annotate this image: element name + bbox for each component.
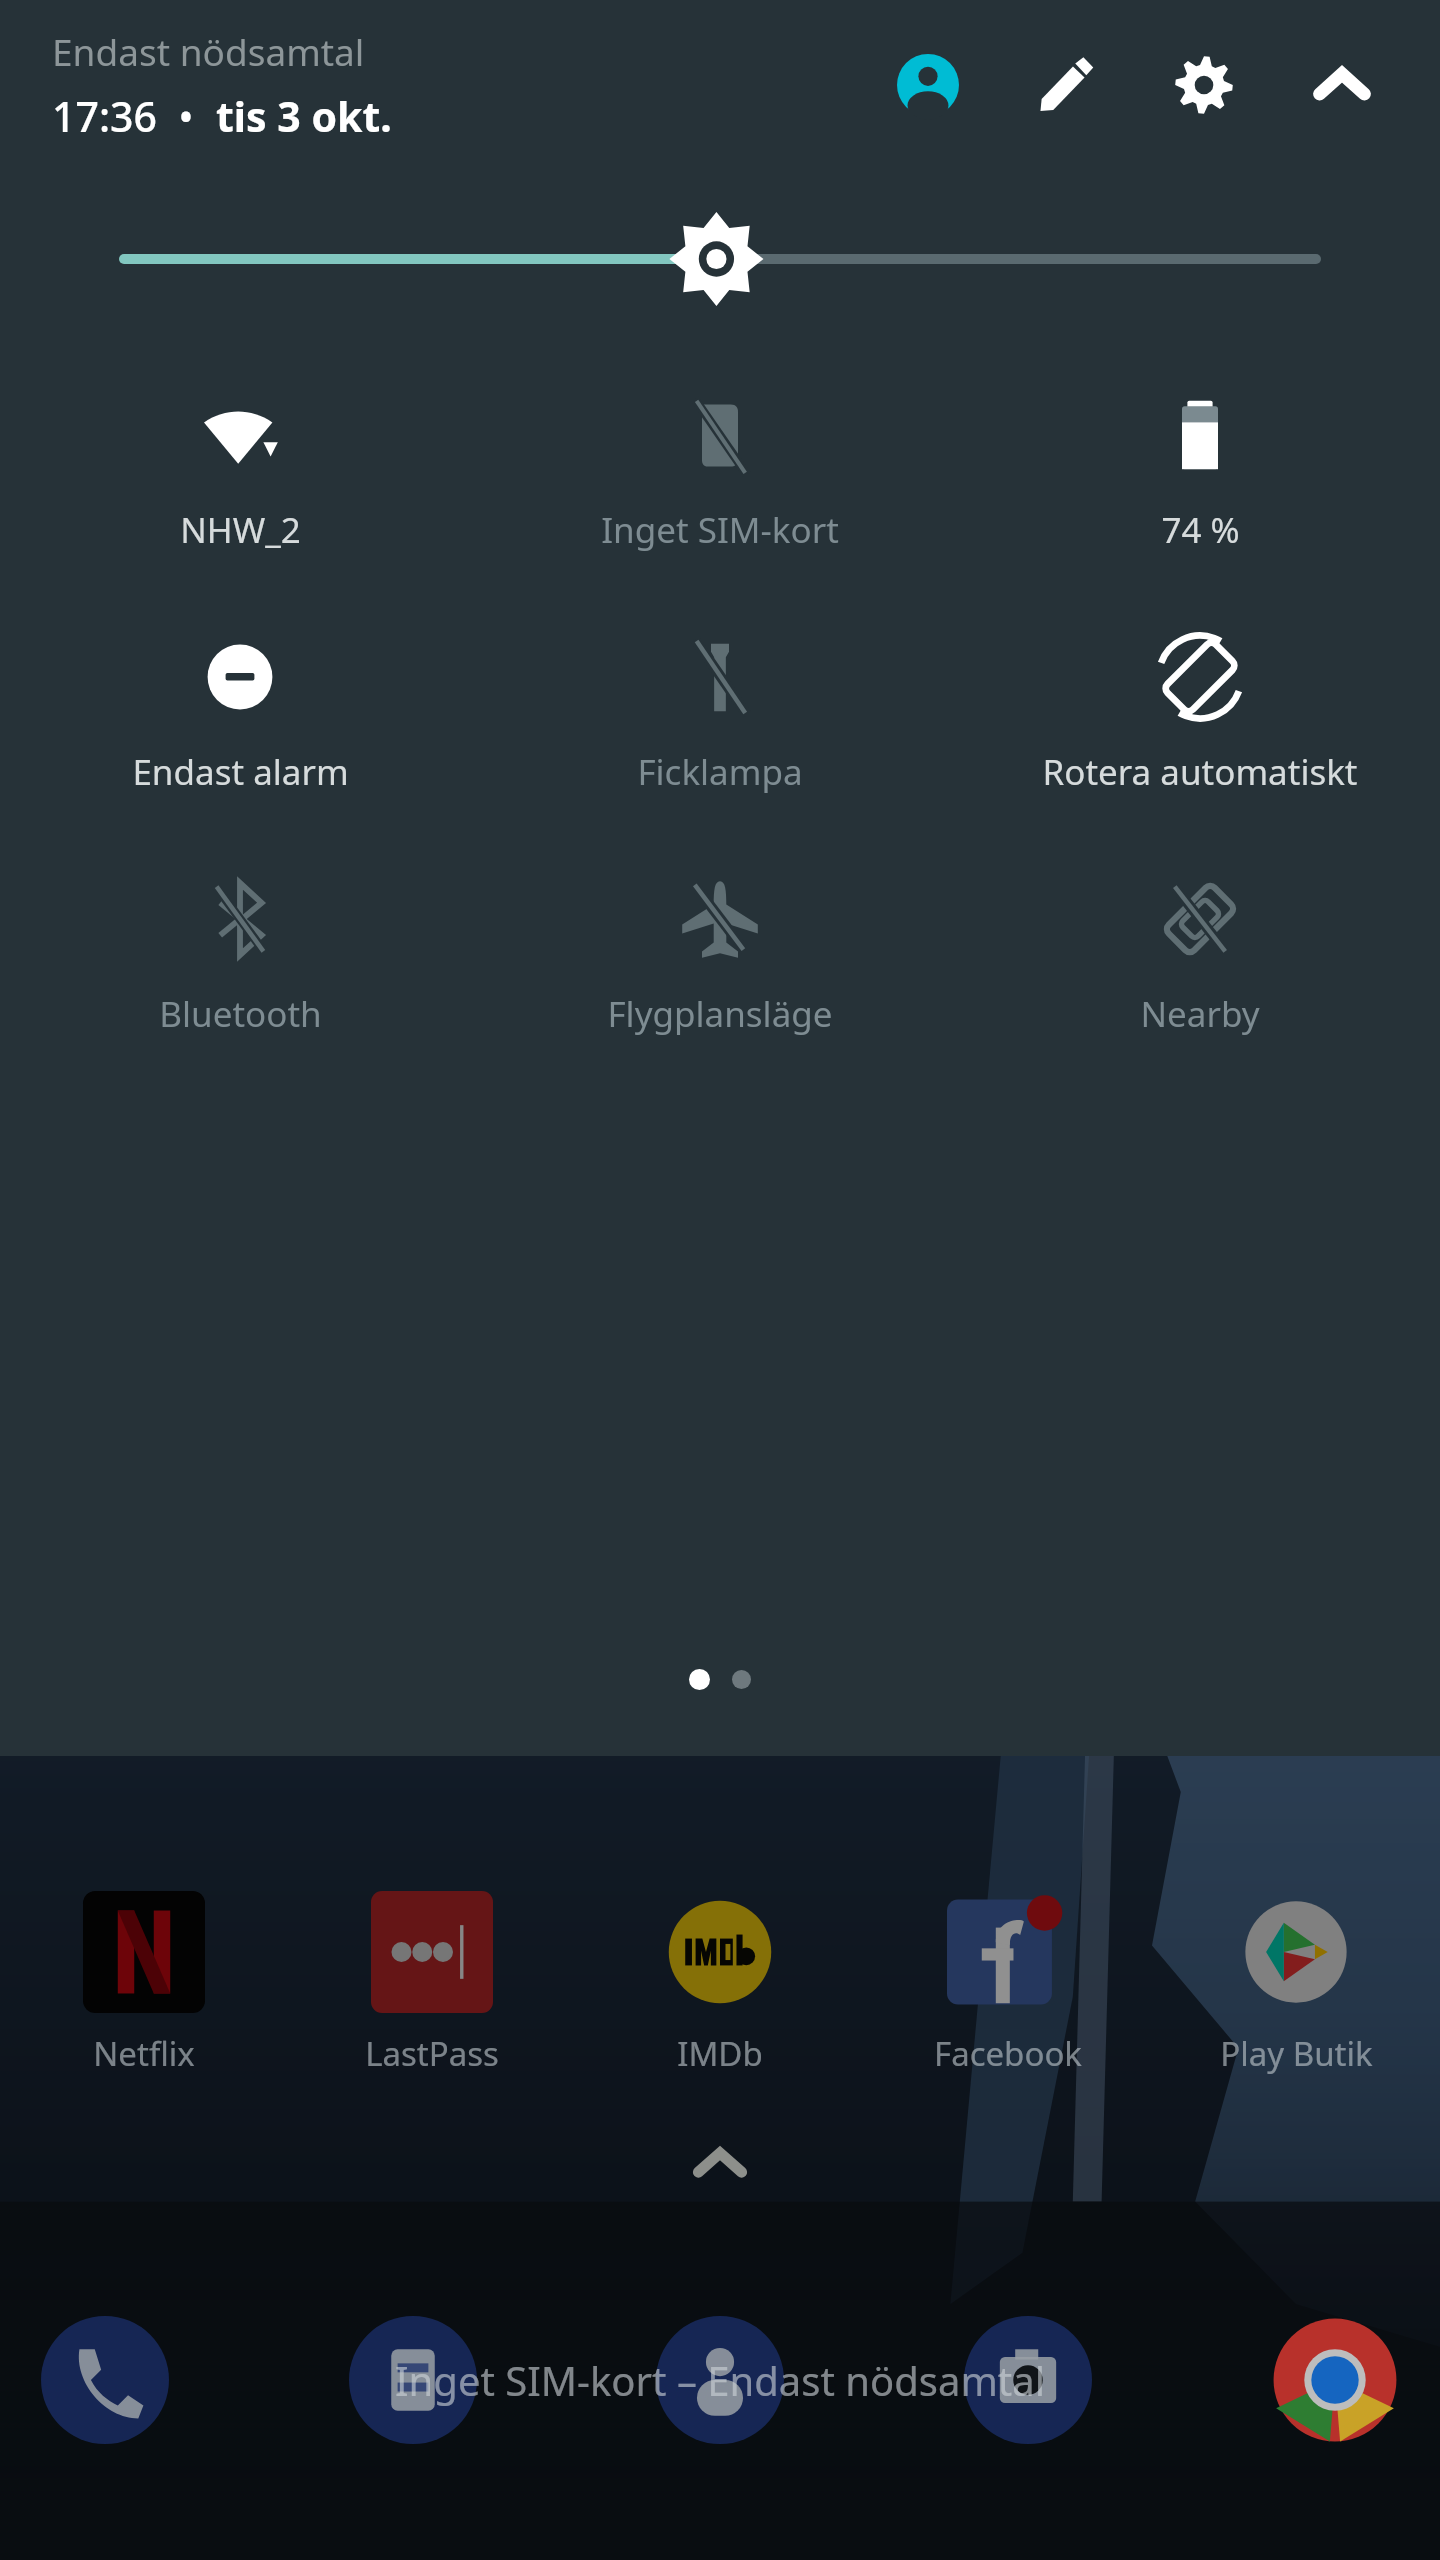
staticText: NHW_2	[180, 506, 301, 554]
button[interactable]: chrome	[1260, 2305, 1410, 2455]
staticText: Endast nödsamtal	[52, 26, 365, 76]
button[interactable]: Dölj	[1296, 39, 1388, 131]
button[interactable]: Inställningar	[1158, 39, 1250, 131]
staticText: Netflix	[93, 2031, 195, 2076]
staticText: Flygplansläge	[607, 990, 833, 1038]
button[interactable]: IMDb	[598, 1891, 842, 2076]
button[interactable]: Sida 2	[732, 1670, 751, 1689]
button[interactable]: Inget SIM-kort	[480, 382, 960, 562]
staticText: Play Butik	[1220, 2031, 1373, 2076]
button[interactable]: Ljusstyrka	[0, 204, 1440, 314]
button[interactable]: phone	[30, 2305, 180, 2455]
staticText: Nearby	[1140, 990, 1260, 1038]
button[interactable]: Öppna applådan	[0, 2120, 1440, 2210]
staticText: tis 3 okt.	[216, 88, 392, 144]
button[interactable]: contacts	[645, 2305, 795, 2455]
staticText: 74 %	[1161, 506, 1240, 554]
button[interactable]: NHW_2	[0, 382, 480, 562]
staticText: Rotera automatiskt	[1042, 748, 1358, 796]
staticText: •	[157, 88, 216, 144]
staticText: 17:36	[52, 88, 157, 144]
staticText: Facebook	[934, 2031, 1082, 2076]
button[interactable]: Play Butik	[1174, 1891, 1418, 2076]
staticText: Ficklampa	[637, 748, 803, 796]
button[interactable]: LastPass	[310, 1891, 554, 2076]
button[interactable]: Flygplansläge	[480, 866, 960, 1046]
button[interactable]: Användare	[882, 39, 974, 131]
button[interactable]: 74 %	[960, 382, 1440, 562]
staticText: Bluetooth	[159, 990, 322, 1038]
button[interactable]: Endast alarm	[0, 624, 480, 804]
staticText: Inget SIM-kort – Endast nödsamtal	[395, 2353, 1045, 2407]
staticText: LastPass	[365, 2031, 499, 2076]
staticText: Endast alarm	[132, 748, 349, 796]
button[interactable]: Sida 1	[689, 1669, 710, 1690]
button[interactable]: messages	[338, 2305, 488, 2455]
button[interactable]: Ficklampa	[480, 624, 960, 804]
button[interactable]: Bluetooth	[0, 866, 480, 1046]
button[interactable]: Nearby	[960, 866, 1440, 1046]
staticText: IMDb	[677, 2031, 763, 2076]
button[interactable]: Facebook	[886, 1891, 1130, 2076]
button[interactable]: Redigera	[1020, 39, 1112, 131]
button[interactable]: camera	[953, 2305, 1103, 2455]
staticText: Inget SIM-kort	[601, 506, 839, 554]
button[interactable]: Rotera automatiskt	[960, 624, 1440, 804]
button[interactable]: Netflix	[22, 1891, 266, 2076]
